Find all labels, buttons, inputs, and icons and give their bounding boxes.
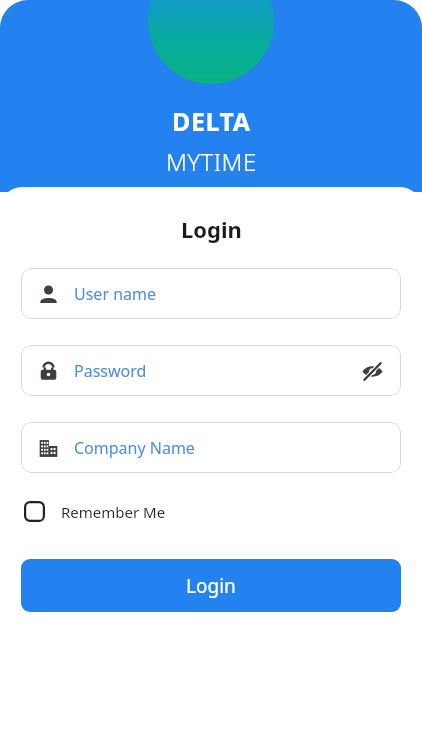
staticText: DELTA	[172, 104, 251, 138]
staticText: User name	[74, 283, 385, 305]
button[interactable]: Show password	[359, 358, 385, 384]
button[interactable]: Company Name	[21, 422, 401, 473]
button[interactable]: Password	[21, 345, 401, 396]
staticText: Company Name	[74, 437, 385, 459]
staticText: Login	[181, 214, 242, 244]
staticText: Remember Me	[61, 502, 166, 522]
button[interactable]: Remember Me	[22, 497, 168, 526]
button[interactable]: User name	[21, 268, 401, 319]
button[interactable]: Login	[21, 559, 401, 612]
staticText: MYTIME	[166, 145, 257, 178]
staticText: Login	[186, 573, 236, 599]
staticText: Password	[74, 360, 359, 382]
